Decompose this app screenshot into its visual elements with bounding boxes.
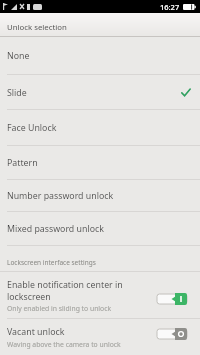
button[interactable]: None bbox=[0, 37, 200, 75]
button[interactable]: Mixed password unlock bbox=[0, 212, 200, 246]
staticText: Waving above the camera to unlock bbox=[7, 340, 121, 349]
staticText: Number password unlock bbox=[7, 190, 114, 202]
staticText: Lockscreen interface settings bbox=[7, 258, 96, 267]
staticText: None bbox=[7, 50, 30, 62]
staticText: Enable notification center in lockscreen bbox=[7, 279, 123, 302]
staticText: 16:27 bbox=[160, 2, 180, 12]
staticText: Face Unlock bbox=[7, 122, 57, 134]
button[interactable]: Face Unlock bbox=[0, 110, 200, 146]
staticText: Slide bbox=[7, 87, 27, 99]
button[interactable]: Vacant unlock bbox=[0, 319, 200, 355]
button[interactable]: Number password unlock bbox=[0, 180, 200, 212]
staticText: Mixed password unlock bbox=[7, 223, 104, 235]
button[interactable]: Pattern bbox=[0, 146, 200, 180]
staticText: Only enabled in sliding to unlock bbox=[7, 304, 112, 313]
button[interactable]: Slide bbox=[0, 75, 200, 110]
staticText: Unlock selection bbox=[7, 22, 67, 33]
staticText: Vacant unlock bbox=[7, 326, 65, 338]
button[interactable]: Enable notification center in lockscreen bbox=[0, 272, 200, 319]
staticText: Pattern bbox=[7, 157, 38, 169]
